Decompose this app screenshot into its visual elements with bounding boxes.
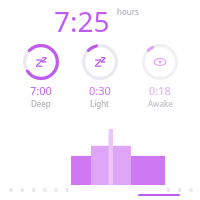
button[interactable]: Awake 0:18 [133, 44, 187, 109]
staticText: 7:25 [54, 2, 110, 40]
staticText: Light [90, 98, 110, 109]
other: Scroll indicator [138, 194, 180, 196]
staticText: 0:18 [149, 83, 171, 98]
staticText: Deep [31, 98, 51, 109]
staticText: hours [117, 6, 139, 17]
button[interactable]: Deep 7:00 [14, 44, 68, 109]
button[interactable]: Light 0:30 [73, 44, 127, 109]
staticText: 7:00 [30, 83, 52, 98]
button[interactable]: Sleep stages chart [0, 129, 200, 185]
staticText: Awake [148, 98, 173, 109]
staticText: 0:30 [89, 83, 111, 98]
